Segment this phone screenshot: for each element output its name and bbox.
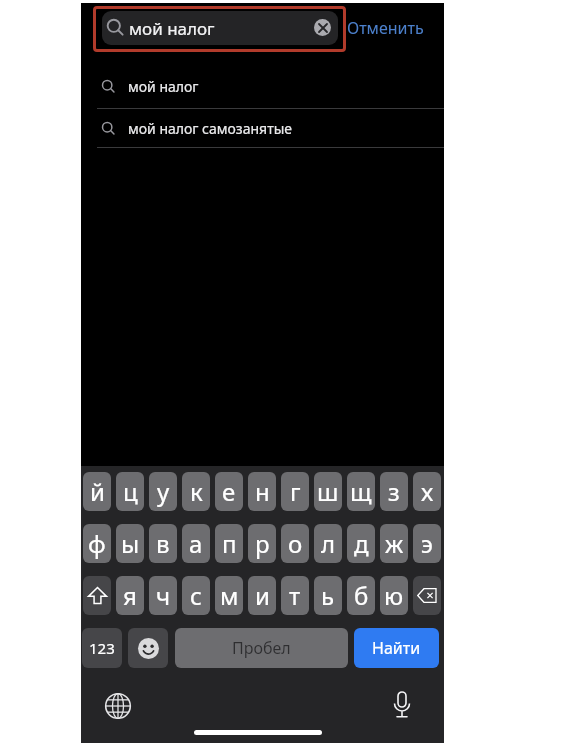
button[interactable]: з — [380, 472, 408, 511]
staticText: а — [189, 527, 203, 560]
button[interactable] — [314, 19, 331, 36]
staticText: х — [421, 475, 434, 508]
button[interactable]: м — [215, 576, 243, 615]
staticText: Отменить — [347, 17, 424, 39]
button[interactable]: с — [182, 576, 210, 615]
button[interactable]: н — [248, 472, 276, 511]
staticText: Найти — [372, 637, 421, 659]
staticText: ч — [156, 579, 171, 612]
button[interactable]: л — [314, 524, 342, 563]
button[interactable]: г — [281, 472, 309, 511]
button[interactable]: мой налог самозанятые — [81, 109, 444, 147]
staticText: р — [255, 527, 270, 560]
button[interactable] — [391, 691, 413, 721]
staticText: Пробел — [232, 637, 291, 659]
button[interactable]: ф — [83, 524, 111, 563]
button[interactable]: 123 — [82, 628, 122, 668]
staticText: п — [222, 527, 237, 560]
staticText: мой налог — [129, 17, 215, 40]
staticText: я — [123, 579, 137, 612]
staticText: у — [157, 475, 170, 508]
button[interactable]: е — [215, 472, 243, 511]
button[interactable]: ж — [380, 524, 408, 563]
button[interactable]: мой налог — [102, 11, 338, 45]
staticText: и — [255, 579, 270, 612]
staticText: ж — [385, 527, 404, 560]
button[interactable] — [128, 628, 168, 668]
staticText: ь — [321, 579, 335, 612]
button[interactable]: я — [116, 576, 144, 615]
staticText: мой налог — [128, 77, 199, 96]
button[interactable]: х — [413, 472, 441, 511]
staticText: ш — [317, 475, 339, 508]
staticText: ф — [88, 527, 106, 560]
staticText: о — [288, 527, 303, 560]
staticText: т — [289, 579, 301, 612]
button[interactable] — [105, 693, 131, 719]
button[interactable]: у — [149, 472, 177, 511]
staticText: э — [421, 527, 433, 560]
staticText: н — [255, 475, 270, 508]
button[interactable]: к — [182, 472, 210, 511]
staticText: к — [190, 475, 203, 508]
button[interactable]: ю — [380, 576, 408, 615]
staticText: г — [290, 475, 301, 508]
button[interactable] — [83, 576, 111, 615]
button[interactable]: ц — [116, 472, 144, 511]
button[interactable]: Отменить — [347, 11, 424, 45]
button[interactable]: п — [215, 524, 243, 563]
staticText: ы — [121, 527, 140, 560]
button[interactable]: э — [413, 524, 441, 563]
staticText: й — [90, 475, 105, 508]
staticText: б — [354, 579, 369, 612]
staticText: д — [354, 527, 369, 560]
button[interactable]: ш — [314, 472, 342, 511]
staticText: м — [220, 579, 239, 612]
staticText: ю — [384, 579, 404, 612]
button[interactable]: о — [281, 524, 309, 563]
button[interactable]: в — [149, 524, 177, 563]
button[interactable]: мой налог — [81, 65, 444, 108]
staticText: щ — [350, 475, 372, 508]
button[interactable]: ч — [149, 576, 177, 615]
button[interactable]: а — [182, 524, 210, 563]
button[interactable]: д — [347, 524, 375, 563]
button[interactable]: й — [83, 472, 111, 511]
button[interactable]: и — [248, 576, 276, 615]
button[interactable]: р — [248, 524, 276, 563]
staticText: е — [222, 475, 236, 508]
staticText: з — [388, 475, 400, 508]
staticText: 123 — [89, 638, 115, 658]
button[interactable]: ы — [116, 524, 144, 563]
button[interactable]: б — [347, 576, 375, 615]
button[interactable]: Пробел — [175, 628, 348, 668]
staticText: с — [190, 579, 202, 612]
staticText: мой налог самозанятые — [128, 119, 292, 138]
staticText: л — [321, 527, 336, 560]
button[interactable]: щ — [347, 472, 375, 511]
button[interactable]: Найти — [354, 628, 439, 668]
button[interactable]: ь — [314, 576, 342, 615]
staticText: в — [156, 527, 170, 560]
button[interactable] — [413, 576, 441, 615]
button[interactable]: т — [281, 576, 309, 615]
staticText: ц — [123, 475, 138, 508]
